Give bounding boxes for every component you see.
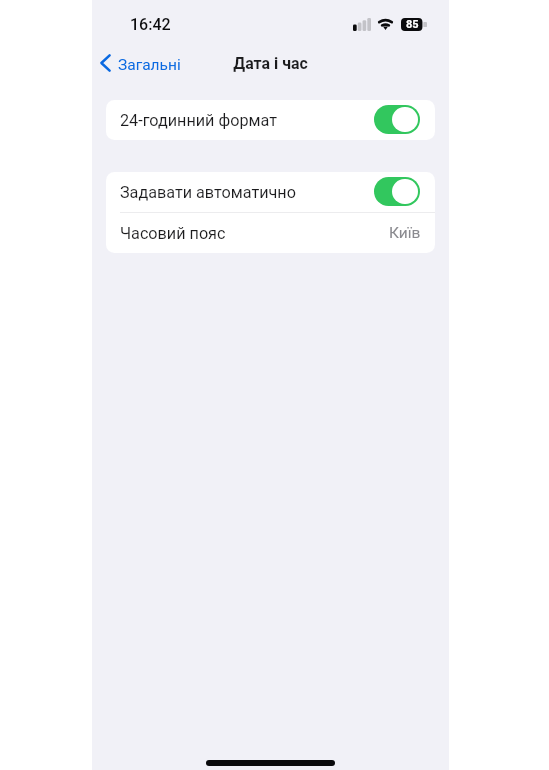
button[interactable]: Часовий пояс [106,213,435,253]
staticText: Часовий пояс [120,224,226,243]
button[interactable]: Загальні [92,54,191,78]
staticText: 85 [406,18,419,31]
staticText: Задавати автоматично [120,183,296,202]
staticText: Дата і час [233,54,308,73]
staticText: Загальні [118,56,181,74]
button[interactable]: 24-годинний формат [106,100,435,140]
button[interactable]: 24-годинний формат [374,105,420,134]
staticText: Київ [389,224,421,242]
staticText: 24-годинний формат [120,111,277,130]
button[interactable]: Задавати автоматично [374,177,420,206]
button[interactable]: Задавати автоматично [106,172,435,212]
staticText: 16:42 [130,15,171,34]
